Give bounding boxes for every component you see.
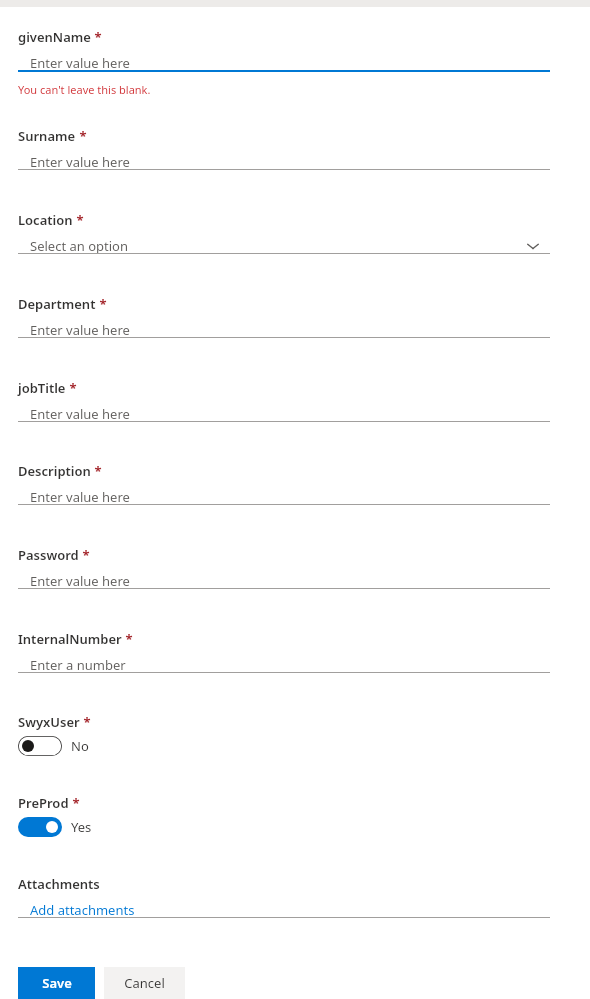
button[interactable]: Enter a number <box>18 650 550 680</box>
other: Open dropdown <box>526 239 540 253</box>
staticText: * <box>122 630 133 648</box>
staticText: Description <box>18 462 91 480</box>
button[interactable]: Enter value here <box>18 315 550 345</box>
staticText: Enter value here <box>30 321 130 339</box>
staticText: Enter a number <box>30 656 126 674</box>
staticText: Enter value here <box>30 153 130 171</box>
button[interactable]: Enter value here <box>18 48 550 78</box>
staticText: Password <box>18 546 79 564</box>
button[interactable]: Enter value here <box>18 147 550 177</box>
button[interactable]: Enter value here <box>18 482 550 512</box>
staticText: Yes <box>71 818 92 836</box>
staticText: * <box>66 379 77 397</box>
button[interactable]: Enter value here <box>18 566 550 596</box>
staticText: InternalNumber <box>18 630 122 648</box>
staticText: * <box>76 127 87 145</box>
staticText: givenName <box>18 28 91 46</box>
button[interactable]: Add attachments <box>18 895 550 925</box>
staticText: Select an option <box>30 237 128 255</box>
staticText: * <box>80 713 91 731</box>
staticText: Enter value here <box>30 572 130 590</box>
button[interactable]: Enter value here <box>18 399 550 429</box>
staticText: PreProd <box>18 794 69 812</box>
staticText: Department <box>18 295 96 313</box>
staticText: jobTitle <box>18 379 66 397</box>
staticText: You can't leave this blank. <box>18 82 151 97</box>
staticText: Save <box>42 974 72 992</box>
button[interactable]: Cancel <box>104 967 185 999</box>
button[interactable]: Select an option <box>18 231 550 261</box>
staticText: * <box>91 462 102 480</box>
staticText: Cancel <box>124 974 165 992</box>
button[interactable]: Yes <box>18 816 92 838</box>
staticText: * <box>91 28 102 46</box>
staticText: Enter value here <box>30 405 130 423</box>
button[interactable]: No <box>18 735 89 757</box>
staticText: No <box>71 737 89 755</box>
button[interactable]: Save <box>18 967 95 999</box>
staticText: Enter value here <box>30 488 130 506</box>
staticText: * <box>69 794 80 812</box>
staticText: Attachments <box>18 875 100 893</box>
staticText: Surname <box>18 127 76 145</box>
staticText: Location <box>18 211 73 229</box>
staticText: Add attachments <box>30 901 135 919</box>
staticText: * <box>73 211 84 229</box>
staticText: SwyxUser <box>18 713 80 731</box>
staticText: Enter value here <box>30 54 130 72</box>
staticText: * <box>96 295 107 313</box>
staticText: * <box>79 546 90 564</box>
